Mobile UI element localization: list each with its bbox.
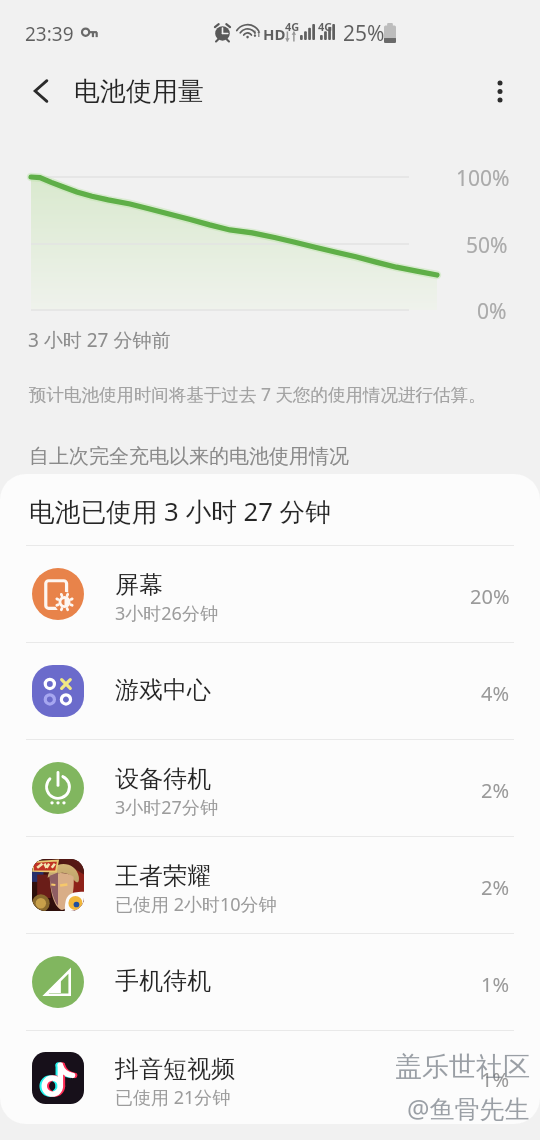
- button[interactable]: 设备待机: [0, 740, 540, 836]
- button[interactable]: 王者荣耀: [0, 837, 540, 933]
- button[interactable]: More options: [472, 63, 528, 119]
- staticText: 3小时27分钟: [115, 795, 218, 820]
- button[interactable]: 游戏中心: [0, 643, 540, 739]
- button[interactable]: 屏幕: [0, 546, 540, 642]
- staticText: 1%: [481, 1066, 510, 1093]
- staticText: @鱼骨先生: [407, 1091, 530, 1125]
- staticText: 50%: [466, 231, 508, 260]
- staticText: 盖乐世社区: [395, 1050, 530, 1084]
- staticText: 4G: [318, 19, 333, 34]
- staticText: 电池已使用 3 小时 27 分钟: [29, 494, 331, 529]
- staticText: 0%: [477, 297, 507, 326]
- staticText: 4%: [481, 680, 510, 707]
- staticText: 3 小时 27 分钟前: [28, 327, 171, 353]
- staticText: 23:39: [25, 21, 74, 47]
- staticText: 预计电池使用时间将基于过去 7 天您的使用情况进行估算。: [29, 382, 486, 406]
- staticText: 4G: [285, 19, 300, 34]
- staticText: 王者荣耀: [115, 861, 211, 891]
- staticText: 游戏中心: [115, 675, 211, 705]
- staticText: 3小时26分钟: [115, 601, 218, 626]
- staticText: 2%: [481, 777, 510, 804]
- staticText: 100%: [456, 164, 510, 193]
- staticText: 抖音短视频: [115, 1054, 235, 1084]
- staticText: 20%: [470, 583, 510, 610]
- staticText: 25%: [343, 19, 385, 48]
- staticText: 自上次完全充电以来的电池使用情况: [29, 444, 349, 469]
- staticText: 已使用 21分钟: [115, 1085, 231, 1110]
- staticText: 1%: [481, 971, 510, 998]
- button[interactable]: 手机待机: [0, 934, 540, 1030]
- staticText: 手机待机: [115, 966, 211, 996]
- button[interactable]: Back: [13, 63, 69, 119]
- button[interactable]: 抖音短视频: [0, 1031, 540, 1124]
- staticText: 已使用 2小时10分钟: [115, 892, 277, 917]
- staticText: 2%: [481, 874, 510, 901]
- staticText: 设备待机: [115, 764, 211, 794]
- staticText: 屏幕: [115, 570, 163, 600]
- staticText: 电池使用量: [74, 75, 204, 108]
- staticText: HD: [263, 24, 286, 44]
